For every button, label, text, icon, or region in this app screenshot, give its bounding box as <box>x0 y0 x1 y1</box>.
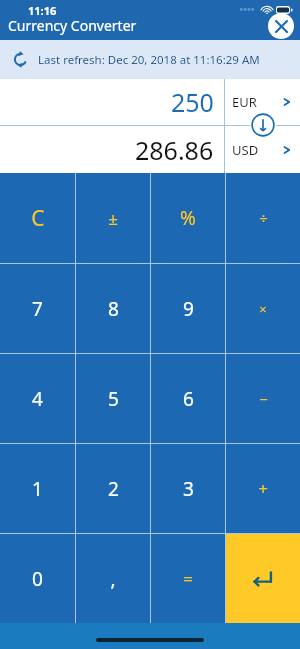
staticText: USD <box>232 141 259 159</box>
button[interactable]: 286.86 <box>0 126 224 173</box>
button[interactable]: C <box>0 173 75 263</box>
staticText: 1 <box>32 476 43 502</box>
staticText: × <box>259 300 267 318</box>
staticText: ÷ <box>259 208 268 228</box>
staticText: + <box>258 477 268 500</box>
button[interactable]: EUR <box>224 79 300 125</box>
button[interactable]: 3 <box>151 444 225 533</box>
staticText: 286.86 <box>135 133 214 167</box>
button[interactable]: Swap currencies <box>250 112 276 138</box>
staticText: 9 <box>183 296 194 322</box>
button[interactable]: Last refresh: Dec 20, 2018 at 11:16:29 A… <box>0 40 300 79</box>
button[interactable]: ÷ <box>226 173 300 263</box>
button[interactable]: 0 <box>0 534 75 623</box>
staticText: − <box>259 389 268 409</box>
staticText: 4 <box>32 386 43 412</box>
button[interactable]: 7 <box>0 264 75 353</box>
button[interactable]: Close <box>268 13 294 39</box>
button[interactable]: ± <box>76 173 150 263</box>
button[interactable]: 250 <box>0 79 224 125</box>
staticText: = <box>183 567 193 590</box>
staticText: 6 <box>183 386 194 412</box>
staticText: 0 <box>32 566 43 592</box>
button[interactable]: 4 <box>0 354 75 443</box>
staticText: EUR <box>232 93 257 111</box>
staticText: ± <box>108 207 118 230</box>
staticText: Last refresh: Dec 20, 2018 at 11:16:29 A… <box>38 52 260 68</box>
button[interactable]: + <box>226 444 300 533</box>
staticText: , <box>110 566 116 592</box>
button[interactable]: % <box>151 173 225 263</box>
button[interactable]: 6 <box>151 354 225 443</box>
staticText: 3 <box>183 476 194 502</box>
button[interactable]: 9 <box>151 264 225 353</box>
staticText: 8 <box>108 296 119 322</box>
button[interactable]: × <box>226 264 300 353</box>
button[interactable]: 5 <box>76 354 150 443</box>
staticText: % <box>180 205 196 231</box>
staticText: C <box>31 204 45 233</box>
staticText: 2 <box>108 476 119 502</box>
button[interactable]: − <box>226 354 300 443</box>
staticText: 7 <box>32 296 43 322</box>
button[interactable]: 8 <box>76 264 150 353</box>
staticText: 250 <box>171 85 214 119</box>
staticText: 11:16 <box>28 3 57 18</box>
button[interactable]: Enter <box>226 534 300 623</box>
button[interactable]: = <box>151 534 225 623</box>
button[interactable]: 1 <box>0 444 75 533</box>
button[interactable]: USD <box>224 126 300 173</box>
button[interactable]: 2 <box>76 444 150 533</box>
staticText: Currency Converter <box>8 16 137 35</box>
staticText: 5 <box>108 386 119 412</box>
button[interactable]: , <box>76 534 150 623</box>
